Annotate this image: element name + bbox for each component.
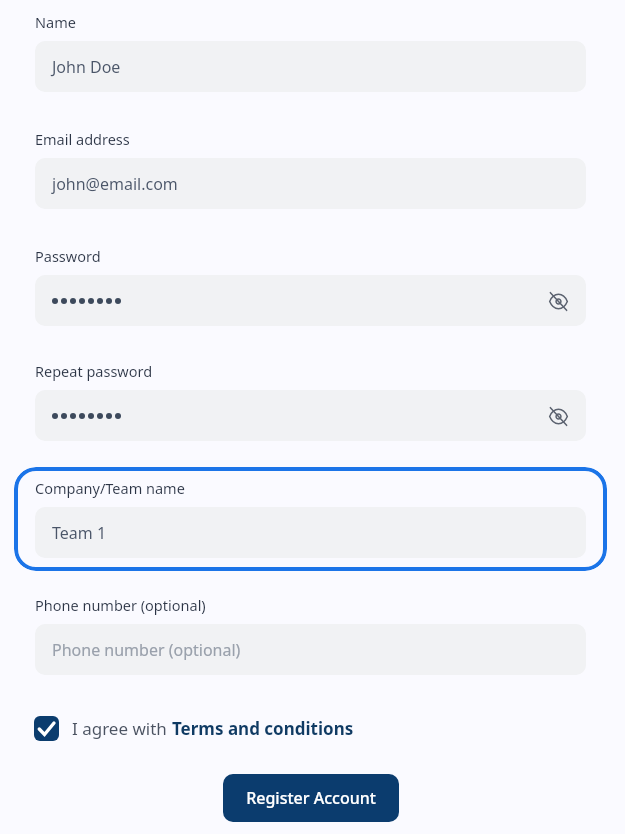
staticText: Name	[35, 12, 76, 32]
staticText: Repeat password	[35, 361, 153, 381]
button[interactable]: Show password	[35, 275, 586, 326]
staticText: Phone number (optional)	[35, 595, 206, 615]
button[interactable]: Register Account	[223, 774, 399, 822]
staticText: Password	[35, 246, 101, 266]
staticText: Phone number (optional)	[52, 639, 241, 661]
staticText: Register Account	[246, 787, 376, 809]
button[interactable]: Terms and conditions	[172, 717, 354, 740]
staticText: I agree with	[72, 717, 172, 740]
button[interactable]: Phone number (optional)	[35, 624, 586, 675]
button[interactable]: John Doe	[35, 41, 586, 92]
button[interactable]: Team 1	[35, 507, 586, 558]
staticText: Email address	[35, 129, 130, 149]
staticText: Team 1	[52, 522, 107, 544]
staticText: Company/Team name	[35, 478, 185, 498]
button[interactable]: Show password	[540, 283, 576, 319]
button[interactable]: Show password	[35, 390, 586, 441]
button[interactable]: john@email.com	[35, 158, 586, 209]
button[interactable]: Show password	[540, 398, 576, 434]
button[interactable]: Company/Team name	[14, 467, 607, 571]
staticText: john@email.com	[52, 173, 178, 195]
staticText: John Doe	[52, 56, 121, 78]
button[interactable]: I agree with	[34, 712, 354, 744]
